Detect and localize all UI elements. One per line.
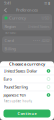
staticText: Euro <box>3 76 11 82</box>
staticText: Rates update hourly. <box>3 99 32 103</box>
button[interactable]: Continue <box>3 109 50 117</box>
staticText: Pound Sterling <box>3 84 27 90</box>
button[interactable]: Back <box>2 6 8 14</box>
staticText: USD <box>42 15 50 21</box>
staticText: ≣ ▮ <box>44 1 50 5</box>
button[interactable]: Japanese Yen <box>0 91 54 99</box>
staticText: Billing <box>4 46 15 51</box>
staticText: Currency <box>9 15 26 21</box>
staticText: United States Dollar <box>3 68 37 74</box>
staticText: •••• 4242 <box>33 38 50 43</box>
staticText: Region <box>4 24 15 29</box>
staticText: Card <box>4 38 13 43</box>
button[interactable]: United States Dollar <box>0 67 54 75</box>
button[interactable]: Pound Sterling <box>0 83 54 91</box>
staticText: PAYMENT <box>5 32 16 35</box>
staticText: Preferences <box>16 7 38 13</box>
staticText: 9:41 <box>4 0 11 6</box>
staticText: Choose a currency <box>9 61 45 67</box>
button[interactable]: Euro <box>0 75 54 83</box>
staticText: Continue <box>17 111 36 116</box>
staticText: Japanese Yen <box>3 92 25 98</box>
staticText: United States <box>28 24 50 29</box>
